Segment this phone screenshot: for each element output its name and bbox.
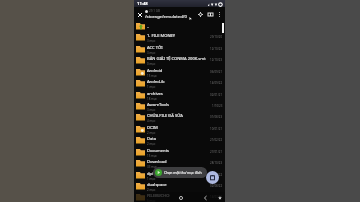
staticText: 4 mục — [147, 119, 156, 123]
staticText: dpi — [147, 171, 154, 177]
staticText: 3 mục — [147, 108, 156, 112]
staticText: AndroLib — [147, 79, 165, 85]
staticText: 1. FILE MONEY — [147, 33, 176, 39]
button[interactable]: Data — [134, 134, 225, 145]
staticText: 29/10/20 — [210, 35, 223, 39]
button[interactable]: Download — [134, 157, 225, 168]
staticText: 2 mục — [147, 131, 156, 135]
staticText: Chọn một thư mục đích — [164, 170, 202, 175]
staticText: ACC TỚI — [147, 45, 163, 51]
staticText: 05/04/22 — [210, 173, 223, 177]
staticText: 33 mục — [147, 165, 157, 169]
button[interactable]: 1. FILE MONEY — [134, 31, 225, 42]
button[interactable]: Paste here — [206, 171, 219, 184]
button[interactable]: DCIM — [134, 123, 225, 134]
button[interactable]: AndroLib — [134, 77, 225, 88]
button[interactable]: More options — [215, 10, 224, 19]
staticText: 15 mục — [147, 74, 157, 78]
staticText: 12/10/23 — [210, 47, 223, 51]
button[interactable]: FILEBUCHO — [134, 191, 225, 202]
staticText: 06/09/21 — [210, 70, 223, 74]
button[interactable]: Documents — [134, 146, 225, 157]
staticText: 2 mục — [147, 188, 156, 192]
staticText: 5 mục — [147, 199, 156, 202]
button[interactable]: Recents — [215, 193, 224, 202]
staticText: dualspace — [147, 182, 167, 188]
button[interactable]: archives — [134, 89, 225, 100]
staticText: 02/08/22 — [210, 184, 223, 188]
button[interactable]: AwareTools — [134, 100, 225, 111]
staticText: BẢN GIẢI TỆ CONMA 200K.smt — [147, 56, 206, 62]
staticText: 3 mục — [147, 51, 156, 55]
staticText: 0 mục — [147, 62, 156, 66]
button[interactable]: Back — [201, 193, 210, 202]
staticText: 29.1 GB — [149, 9, 160, 13]
button[interactable]: Select all — [195, 9, 205, 19]
staticText: archives — [147, 91, 163, 97]
staticText: 02/01/21 — [210, 93, 223, 97]
staticText: 27/01/21 — [210, 150, 223, 154]
staticText: 14/03/23 — [210, 195, 223, 199]
button[interactable]: Close — [134, 9, 145, 20]
staticText: 14/09/22 — [210, 81, 223, 85]
button[interactable]: View mode — [205, 9, 215, 19]
button[interactable]: BẢN GIẢI TỆ CONMA 200K.smt — [134, 54, 225, 65]
staticText: FILEBUCHO — [147, 193, 170, 199]
button[interactable]: Android — [134, 66, 225, 77]
staticText: 28/10/23 — [210, 161, 223, 165]
button[interactable]: Chọn một thư mục đích — [153, 167, 207, 178]
button[interactable]: ACC TỚI — [134, 43, 225, 54]
staticText: 10/01/21 — [210, 127, 223, 131]
staticText: 21/02/22 — [210, 138, 223, 142]
staticText: Documents — [147, 148, 170, 154]
staticText: 01/08/23 — [210, 115, 223, 119]
staticText: CHỨA FILE ĐÃ SỬA — [147, 113, 183, 119]
staticText: Data — [147, 136, 157, 142]
staticText: 3 mục — [147, 39, 156, 43]
staticText: 11:48 — [137, 1, 148, 7]
staticText: DCIM — [147, 125, 158, 131]
button[interactable]: .. — [134, 20, 225, 31]
button[interactable]: Home — [176, 193, 185, 202]
button[interactable]: dualspace — [134, 180, 225, 191]
button[interactable]: CHỨA FILE ĐÃ SỬA — [134, 111, 225, 122]
staticText: 1/10/23 — [212, 104, 223, 108]
staticText: .. — [147, 24, 150, 30]
staticText: 15 mục — [147, 154, 157, 158]
staticText: /storage/emulated/0 — [145, 13, 187, 19]
staticText: 12/10/23 — [210, 58, 223, 62]
staticText: 18 mục — [147, 97, 157, 101]
staticText: 1 mục — [147, 85, 156, 89]
staticText: AwareTools — [147, 102, 170, 108]
staticText: 1 mục — [147, 177, 156, 181]
button[interactable]: dpi — [134, 169, 225, 180]
staticText: 2 mục — [147, 142, 156, 146]
staticText: Android — [147, 68, 163, 74]
staticText: Download — [147, 159, 167, 165]
